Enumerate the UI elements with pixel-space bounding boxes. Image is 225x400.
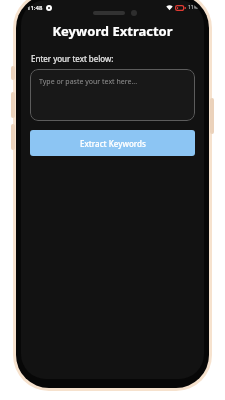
other: Wi-Fi bbox=[166, 4, 173, 11]
button[interactable]: Type or paste your text here... bbox=[30, 69, 195, 121]
staticText: Keyword Extractor bbox=[21, 22, 204, 40]
staticText: 11:48 bbox=[27, 4, 43, 12]
button[interactable]: Extract Keywords bbox=[30, 130, 195, 156]
staticText: 11% bbox=[188, 4, 198, 11]
staticText: Extract Keywords bbox=[80, 138, 146, 149]
staticText: Type or paste your text here... bbox=[39, 77, 138, 87]
staticText: Enter your text below: bbox=[31, 53, 114, 64]
